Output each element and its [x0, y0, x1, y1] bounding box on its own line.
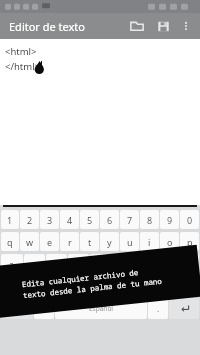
button[interactable]: i — [140, 232, 159, 251]
button[interactable]: 9 — [160, 210, 179, 229]
staticText: z — [37, 280, 42, 292]
button[interactable]: z — [30, 276, 49, 295]
button[interactable]: 3 — [40, 210, 59, 229]
staticText: 0 — [187, 214, 193, 226]
button[interactable]: w — [20, 232, 39, 251]
staticText: q — [7, 236, 13, 248]
staticText: 4 — [67, 214, 73, 226]
button[interactable]: Enter — [169, 298, 199, 319]
button[interactable]: 2 — [20, 210, 39, 229]
staticText: 5 — [87, 214, 93, 226]
button[interactable]: More options — [176, 16, 196, 36]
button[interactable]: n — [130, 276, 149, 295]
button[interactable]: Sym — [1, 298, 33, 319]
staticText: s — [32, 258, 37, 270]
button[interactable]: 7 — [120, 210, 139, 229]
staticText: 7 — [127, 214, 133, 226]
staticText: Editor de texto — [9, 19, 85, 34]
staticText: t — [88, 236, 92, 248]
button[interactable]: c — [70, 276, 89, 295]
button[interactable]: a — [1, 254, 23, 273]
staticText: o — [167, 236, 173, 248]
button[interactable]: b — [110, 276, 129, 295]
button[interactable]: m — [150, 276, 169, 295]
staticText: y — [107, 236, 112, 248]
staticText: 8 — [147, 214, 153, 226]
staticText: <html> — [5, 45, 37, 58]
button[interactable]: 5 — [80, 210, 99, 229]
staticText: r — [68, 236, 72, 248]
button[interactable]: Español — [55, 298, 147, 319]
button[interactable]: j — [134, 254, 155, 273]
staticText: Edita cualquier archivo de texto desde l… — [21, 265, 163, 300]
staticText: d — [54, 258, 60, 270]
staticText: Español — [89, 304, 113, 313]
button[interactable]: <html> — [0, 39, 200, 219]
button[interactable]: q — [1, 232, 19, 251]
staticText: a — [9, 258, 15, 270]
button[interactable]: v — [90, 276, 109, 295]
button[interactable]: Open file — [124, 13, 150, 39]
staticText: i — [148, 236, 151, 248]
button[interactable]: o — [160, 232, 179, 251]
staticText: 9 — [167, 214, 173, 226]
button[interactable]: r — [60, 232, 79, 251]
staticText: u — [127, 236, 133, 248]
button[interactable]: p — [180, 232, 199, 251]
button[interactable]: Voice input — [34, 298, 54, 319]
staticText: w — [26, 236, 34, 248]
button[interactable]: Shift — [1, 276, 29, 295]
button[interactable]: y — [100, 232, 119, 251]
staticText: . — [157, 303, 160, 314]
staticText: c — [77, 280, 82, 292]
button[interactable]: . — [148, 298, 168, 319]
button[interactable]: 8 — [140, 210, 159, 229]
button[interactable]: 4 — [60, 210, 79, 229]
button[interactable]: t — [80, 232, 99, 251]
button[interactable]: 0 — [180, 210, 199, 229]
button[interactable]: f — [68, 254, 89, 273]
staticText: p — [187, 236, 193, 248]
button[interactable]: h — [112, 254, 133, 273]
staticText: 2 — [27, 214, 33, 226]
button[interactable]: s — [24, 254, 45, 273]
button[interactable]: Save — [150, 13, 176, 39]
staticText: e — [47, 236, 53, 248]
staticText: v — [97, 280, 102, 292]
button[interactable]: 6 — [100, 210, 119, 229]
button[interactable]: u — [120, 232, 139, 251]
staticText: 1 — [7, 214, 13, 226]
button[interactable]: l — [178, 254, 199, 273]
button[interactable]: x — [50, 276, 69, 295]
button[interactable]: e — [40, 232, 59, 251]
button[interactable]: 1 — [1, 210, 19, 229]
staticText: n — [137, 280, 143, 292]
staticText: b — [117, 280, 123, 292]
staticText: </html> — [5, 60, 41, 73]
other: Cursor handle — [33, 61, 47, 75]
staticText: 3 — [47, 214, 53, 226]
button[interactable]: g — [90, 254, 111, 273]
staticText: m — [155, 280, 164, 292]
staticText: 6 — [107, 214, 113, 226]
staticText: x — [57, 280, 62, 292]
button[interactable]: d — [46, 254, 67, 273]
